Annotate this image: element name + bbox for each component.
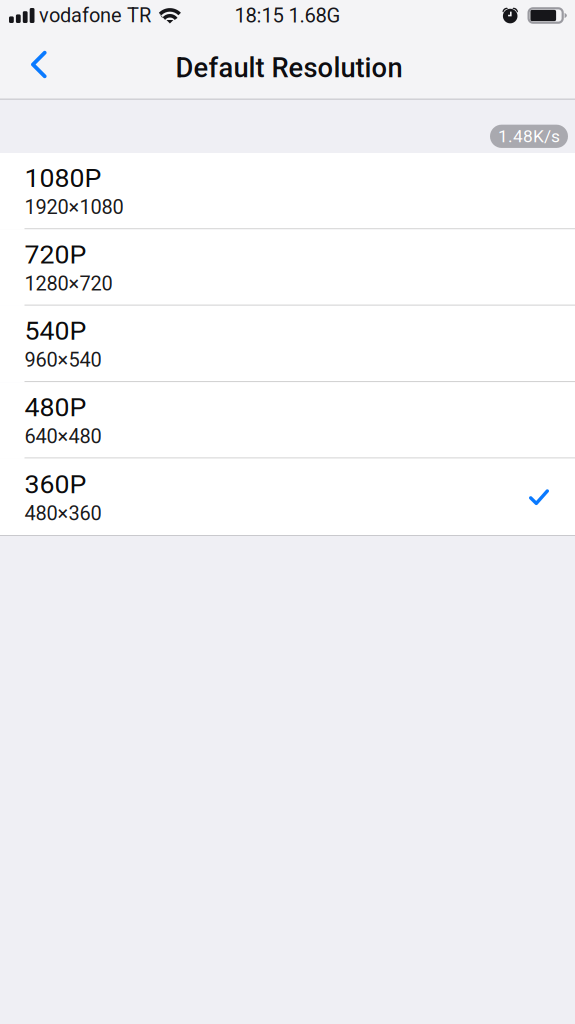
button[interactable]: 1080P — [0, 153, 575, 229]
button[interactable]: 360P — [0, 459, 575, 535]
staticText: 1.48K/s — [498, 126, 560, 146]
staticText: 1920×1080 — [24, 195, 123, 219]
staticText: 720P — [24, 239, 86, 270]
staticText: vodafone TR — [39, 4, 151, 27]
staticText: 640×480 — [24, 425, 101, 448]
staticText: 1280×720 — [24, 272, 112, 295]
button[interactable]: 480P — [0, 382, 575, 459]
staticText: 480×360 — [24, 502, 101, 525]
staticText: 540P — [24, 315, 86, 346]
staticText: 480P — [24, 391, 86, 423]
staticText: 360P — [24, 468, 86, 500]
staticText: 18:15 1.68G — [234, 4, 340, 27]
staticText: 960×540 — [24, 348, 101, 372]
button[interactable]: 540P — [0, 306, 575, 382]
staticText: 1080P — [24, 162, 101, 194]
button[interactable]: 720P — [0, 229, 575, 306]
staticText: Default Resolution — [175, 52, 402, 84]
button[interactable]: Back — [0, 31, 67, 98]
